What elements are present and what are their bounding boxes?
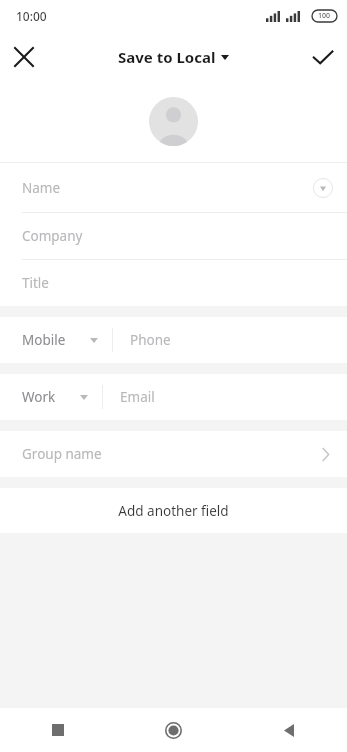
button[interactable]: Mobile bbox=[0, 317, 347, 363]
button[interactable]: Group name bbox=[0, 431, 347, 477]
staticText: 100 bbox=[318, 11, 331, 21]
button[interactable]: Work bbox=[0, 374, 347, 420]
staticText: Group name bbox=[22, 445, 322, 463]
button[interactable]: Add another field bbox=[0, 488, 347, 533]
staticText: Save to Local bbox=[118, 47, 216, 67]
button[interactable]: Title bbox=[0, 260, 347, 306]
staticText: Work bbox=[22, 388, 56, 406]
staticText: Name bbox=[22, 179, 313, 197]
button[interactable]: Back bbox=[231, 708, 347, 752]
button[interactable]: Recent apps bbox=[0, 708, 115, 752]
button[interactable]: Close bbox=[0, 33, 48, 81]
staticText: 10:00 bbox=[16, 8, 47, 24]
staticText: Mobile bbox=[22, 331, 66, 349]
button[interactable]: Add photo bbox=[149, 97, 198, 146]
staticText: Company bbox=[22, 227, 83, 245]
staticText: Add another field bbox=[118, 502, 229, 520]
button[interactable]: Home bbox=[115, 708, 231, 752]
staticText: Phone bbox=[130, 331, 231, 349]
button[interactable]: Save to Local bbox=[118, 47, 229, 67]
button[interactable]: Name bbox=[0, 163, 347, 212]
staticText: Title bbox=[22, 274, 49, 292]
staticText: Email bbox=[120, 388, 226, 406]
button[interactable]: Company bbox=[0, 213, 347, 259]
button[interactable]: Expand name fields bbox=[313, 178, 333, 198]
button[interactable]: Save bbox=[299, 33, 347, 81]
